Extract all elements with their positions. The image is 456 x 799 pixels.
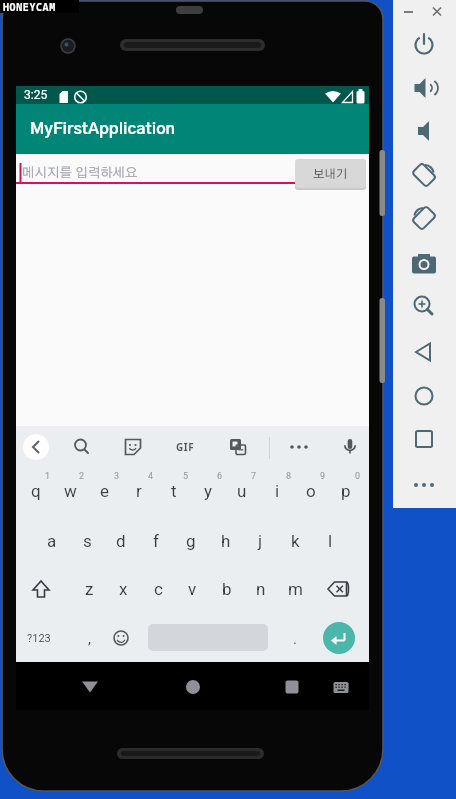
button[interactable]	[401, 4, 417, 18]
staticText: s	[83, 531, 92, 551]
button[interactable]: i	[261, 469, 293, 513]
button[interactable]: ?123	[22, 616, 56, 660]
button[interactable]: u	[226, 469, 258, 513]
staticText: z	[85, 579, 94, 599]
button[interactable]	[402, 471, 446, 499]
button[interactable]	[119, 433, 147, 461]
button[interactable]: s	[71, 519, 103, 563]
staticText: 4	[148, 471, 154, 482]
staticText: l	[328, 531, 333, 551]
staticText: c	[154, 579, 163, 599]
button[interactable]: d	[105, 519, 137, 563]
button[interactable]: t	[158, 469, 190, 513]
button[interactable]	[24, 567, 58, 611]
staticText: 2	[79, 471, 85, 482]
staticText: n	[256, 579, 266, 599]
button[interactable]: ,	[78, 622, 100, 656]
button[interactable]: k	[279, 519, 311, 563]
staticText: 9	[320, 471, 326, 482]
staticText: w	[64, 481, 77, 501]
button[interactable]	[402, 74, 446, 102]
staticText: 3	[114, 471, 120, 482]
staticText: e	[100, 481, 110, 501]
staticText: g	[186, 531, 196, 551]
staticText: 7	[251, 471, 257, 482]
staticText: i	[275, 481, 280, 501]
button[interactable]	[402, 117, 446, 145]
button[interactable]	[402, 338, 446, 366]
button[interactable]	[285, 433, 313, 461]
staticText: r	[136, 481, 142, 501]
staticText: j	[258, 531, 263, 551]
button[interactable]: h	[210, 519, 242, 563]
staticText: ?123	[27, 632, 51, 645]
button[interactable]	[402, 382, 446, 410]
staticText: f	[153, 531, 159, 551]
staticText: t	[171, 481, 177, 501]
staticText: 6	[217, 471, 223, 482]
button[interactable]	[323, 622, 355, 654]
staticText: 3:25	[24, 88, 48, 102]
button[interactable]	[68, 433, 96, 461]
staticText: .	[293, 630, 297, 648]
staticText: u	[237, 481, 247, 501]
button[interactable]	[402, 425, 446, 453]
staticText: b	[222, 579, 232, 599]
button[interactable]	[104, 616, 138, 660]
staticText: p	[341, 481, 351, 501]
staticText: GIF	[176, 440, 195, 454]
button[interactable]: p	[330, 469, 362, 513]
button[interactable]: v	[176, 567, 208, 611]
button[interactable]	[429, 4, 445, 18]
button[interactable]	[402, 31, 446, 59]
button[interactable]: .	[284, 622, 306, 656]
button[interactable]	[402, 250, 446, 278]
staticText: ,	[88, 630, 91, 648]
staticText: x	[119, 579, 128, 599]
button[interactable]	[224, 433, 252, 461]
button[interactable]: b	[211, 567, 243, 611]
button[interactable]	[402, 293, 446, 321]
button[interactable]	[177, 671, 209, 703]
button[interactable]: m	[279, 567, 311, 611]
staticText: 보내기	[313, 168, 348, 180]
staticText: HONEYCAM	[3, 0, 56, 13]
button[interactable]: o	[295, 469, 327, 513]
button[interactable]	[22, 433, 50, 461]
staticText: m	[288, 579, 303, 599]
staticText: a	[47, 531, 57, 551]
staticText: o	[306, 481, 316, 501]
button[interactable]: 보내기	[295, 159, 366, 188]
button[interactable]: j	[244, 519, 276, 563]
button[interactable]: f	[140, 519, 172, 563]
staticText: y	[204, 481, 213, 501]
button[interactable]: l	[314, 519, 346, 563]
button[interactable]: z	[73, 567, 105, 611]
button[interactable]: q	[20, 469, 52, 513]
button[interactable]: GIF	[171, 433, 199, 461]
button[interactable]	[402, 204, 446, 232]
button[interactable]: 메시지를 입력하세요	[16, 156, 341, 190]
button[interactable]	[74, 671, 106, 703]
button[interactable]: x	[107, 567, 139, 611]
button[interactable]	[322, 567, 356, 611]
button[interactable]: w	[54, 469, 86, 513]
button[interactable]: r	[123, 469, 155, 513]
button[interactable]	[276, 671, 308, 703]
button[interactable]	[402, 161, 446, 189]
button[interactable]	[325, 671, 357, 703]
button[interactable]	[336, 433, 364, 461]
staticText: d	[116, 531, 126, 551]
button[interactable]: g	[175, 519, 207, 563]
staticText: k	[291, 531, 300, 551]
button[interactable]: n	[245, 567, 277, 611]
button[interactable]: c	[142, 567, 174, 611]
staticText: 메시지를 입력하세요	[22, 167, 138, 180]
staticText: 8	[286, 471, 292, 482]
button[interactable]: y	[192, 469, 224, 513]
button[interactable]: e	[89, 469, 121, 513]
button[interactable]: a	[36, 519, 68, 563]
staticText: 5	[183, 471, 189, 482]
